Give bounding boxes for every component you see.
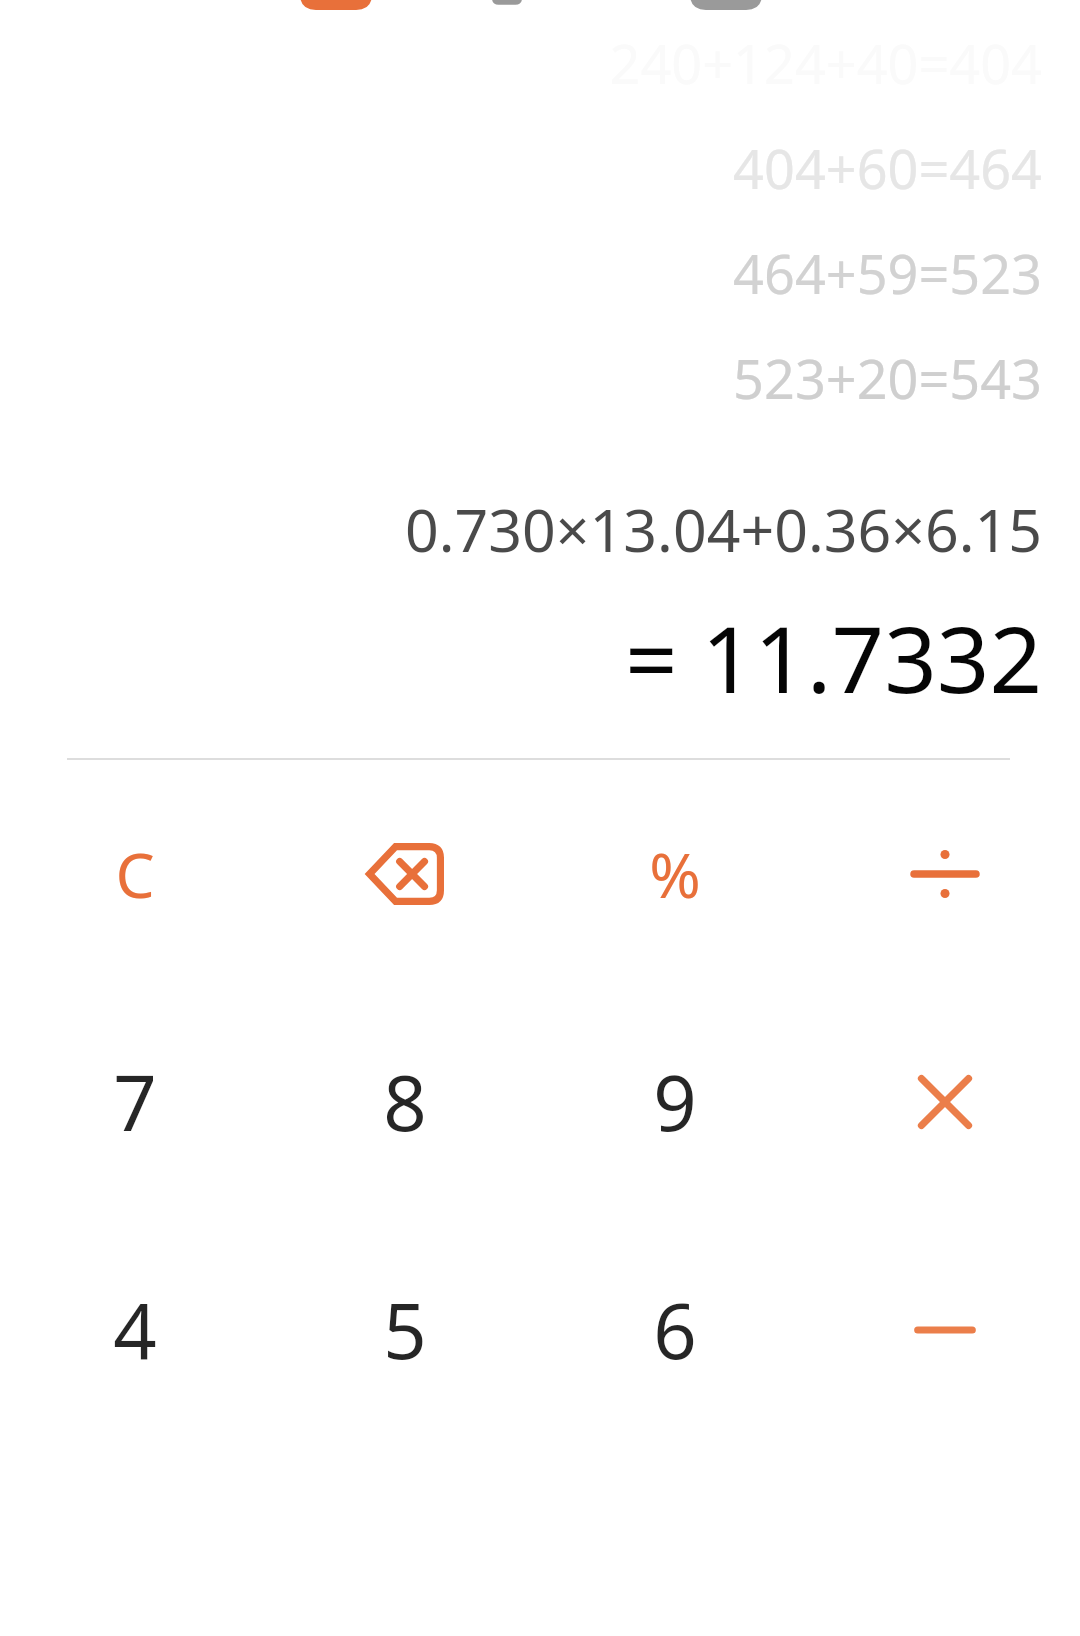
- button[interactable]: 464+59=523: [0, 236, 1080, 310]
- button[interactable]: Multiply: [810, 988, 1080, 1216]
- button[interactable]: Divide: [810, 760, 1080, 988]
- staticText: 4: [113, 1278, 157, 1382]
- staticText: 6: [653, 1278, 697, 1382]
- button[interactable]: 7: [0, 988, 270, 1216]
- button[interactable]: 5: [270, 1216, 540, 1444]
- staticText: 5: [383, 1278, 427, 1382]
- button[interactable]: Backspace: [270, 760, 540, 988]
- button[interactable]: Clear: [0, 760, 270, 988]
- button[interactable]: Percent: [540, 760, 810, 988]
- staticText: 0.730×13.04+0.36×6.15: [0, 489, 1042, 569]
- button[interactable]: 6: [540, 1216, 810, 1444]
- button[interactable]: 523+20=543: [0, 341, 1080, 415]
- staticText: 7: [113, 1050, 157, 1154]
- staticText: = 11.7332: [0, 595, 1042, 720]
- button[interactable]: 404+60=464: [0, 131, 1080, 205]
- staticText: 8: [383, 1050, 427, 1154]
- staticText: %: [649, 832, 701, 916]
- staticText: C: [115, 832, 155, 916]
- button[interactable]: 4: [0, 1216, 270, 1444]
- button[interactable]: 8: [270, 988, 540, 1216]
- button[interactable]: Minus: [810, 1216, 1080, 1444]
- button[interactable]: 9: [540, 988, 810, 1216]
- staticText: 9: [653, 1050, 697, 1154]
